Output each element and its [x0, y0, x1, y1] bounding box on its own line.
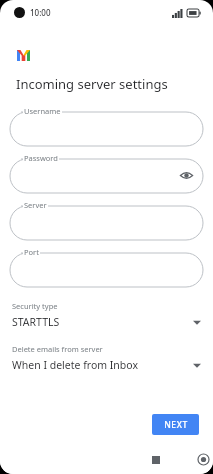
button[interactable]: Recent apps: [49, 445, 213, 474]
staticText: Security type: [12, 301, 58, 311]
button[interactable]: Port: [10, 247, 203, 287]
staticText: Port: [24, 247, 39, 257]
staticText: Password: [24, 153, 58, 163]
button[interactable]: Home: [97, 445, 213, 474]
staticText: Delete emails from server: [12, 344, 103, 354]
staticText: Server: [24, 200, 47, 210]
button[interactable]: Password: [10, 153, 203, 193]
staticText: STARTTLS: [12, 315, 193, 329]
button[interactable]: Delete emails from server: [12, 342, 201, 374]
button[interactable]: Security type: [12, 299, 201, 331]
staticText: 10:00: [30, 7, 51, 18]
staticText: NEXT: [164, 419, 188, 431]
staticText: Incoming server settings: [16, 75, 168, 93]
staticText: When I delete from Inbox: [12, 358, 193, 372]
button[interactable]: Back: [146, 445, 213, 474]
button[interactable]: NEXT: [152, 414, 199, 435]
staticText: Username: [24, 106, 61, 116]
button[interactable]: Username: [10, 106, 203, 146]
button[interactable]: Show password: [177, 166, 195, 184]
button[interactable]: Server: [10, 200, 203, 240]
